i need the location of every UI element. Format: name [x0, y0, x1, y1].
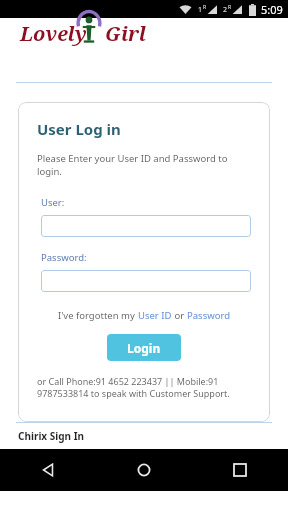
staticText: Password: — [41, 251, 87, 264]
button[interactable]: Password — [187, 309, 230, 322]
staticText: Girl — [105, 20, 147, 47]
staticText: Login — [127, 340, 161, 356]
staticText: or Call Phone:91 4652 223437 || Mobile:9… — [37, 375, 251, 400]
staticText: 5:09 — [261, 2, 283, 17]
button[interactable]: Home — [123, 449, 165, 491]
staticText: Chirix Sign In — [18, 429, 85, 443]
button[interactable]: Recent apps — [219, 449, 261, 491]
staticText: User ID — [138, 309, 172, 322]
button[interactable]: Password input field — [41, 270, 251, 292]
staticText: R — [203, 4, 207, 11]
staticText: Lovely — [20, 20, 87, 47]
staticText: I've forgotten my — [58, 309, 138, 322]
button[interactable]: Back — [27, 449, 69, 491]
staticText: User: — [41, 196, 65, 209]
button[interactable]: User ID — [138, 309, 172, 322]
staticText: or — [172, 309, 187, 322]
staticText: Please Enter your User ID and Password t… — [37, 152, 251, 178]
button[interactable]: User input field — [41, 215, 251, 237]
staticText: 2 — [223, 5, 228, 15]
staticText: User Log in — [37, 119, 121, 139]
staticText: R — [228, 4, 232, 11]
staticText: Password — [187, 309, 230, 322]
button[interactable]: Login — [107, 334, 181, 361]
staticText: 1 — [198, 5, 203, 15]
